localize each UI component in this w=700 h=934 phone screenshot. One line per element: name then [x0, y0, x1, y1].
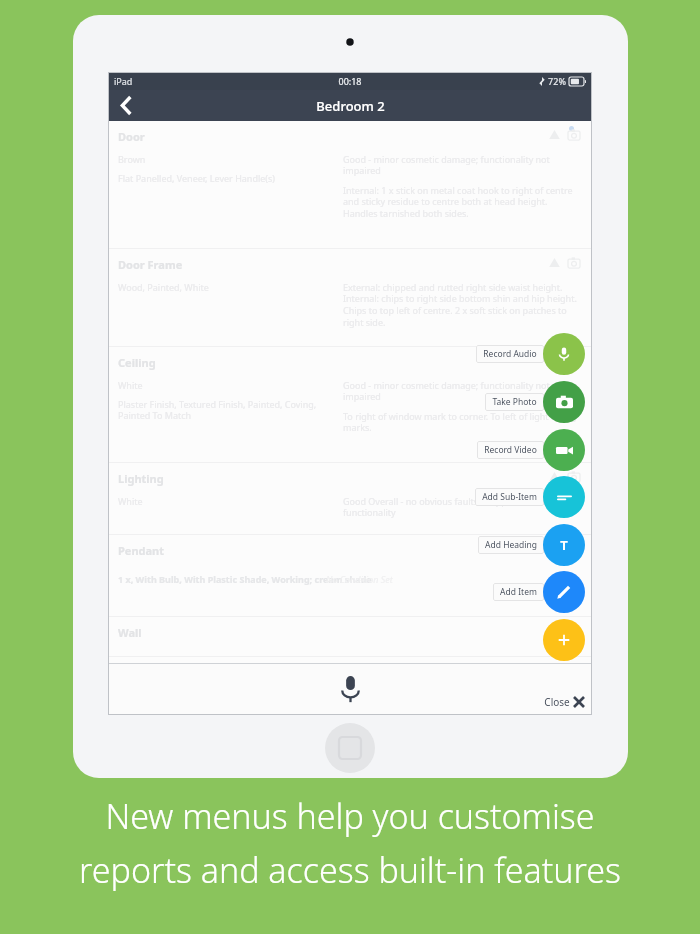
button[interactable]: Back	[108, 90, 144, 121]
button[interactable]: Door	[108, 121, 592, 249]
button[interactable]: Take Photo	[485, 393, 544, 411]
button[interactable]: Record Video	[543, 429, 585, 471]
button[interactable]: Record Audio	[476, 345, 544, 363]
staticText: New menus help you customise	[105, 793, 595, 839]
button[interactable]: Close	[544, 695, 584, 709]
button[interactable]: Add Sub-Item	[475, 488, 544, 506]
button[interactable]: Door Frame	[108, 249, 592, 347]
button[interactable]: Add Heading	[478, 536, 544, 554]
button[interactable]: Add Item	[493, 583, 544, 601]
staticText: Good - minor cosmetic damage; functional…	[343, 379, 578, 403]
staticText: iPad	[114, 75, 133, 87]
staticText: 1 x, With Bulb, With Plastic Shade, Work…	[118, 573, 375, 585]
staticText: To right of window mark to corner. To le…	[343, 410, 578, 434]
button[interactable]: Add Sub-Item	[543, 476, 585, 518]
staticText: Wall	[118, 625, 142, 640]
staticText: External: chipped and rutted right side …	[343, 281, 578, 329]
button[interactable]: Record audio	[329, 668, 371, 710]
staticText: Plaster Finish, Textured Finish, Painted…	[118, 398, 335, 422]
staticText: Good Overall - no obvious faults in appe…	[343, 495, 578, 519]
button[interactable]: Lighting	[108, 463, 592, 535]
staticText: Take Photo	[492, 396, 537, 408]
staticText: Internal: 1 x stick on metal coat hook t…	[343, 184, 578, 220]
button[interactable]: Record Video	[477, 441, 544, 459]
staticText: Ceiling	[118, 355, 156, 370]
staticText: No Condition Set	[326, 573, 393, 585]
staticText: Close	[544, 695, 570, 709]
button[interactable]: Wall	[108, 617, 592, 657]
staticText: reports and access built-in features	[79, 847, 621, 893]
button[interactable]: Add Heading	[543, 524, 585, 566]
button[interactable]: Pendant	[108, 535, 592, 617]
staticText: Lighting	[118, 471, 164, 486]
staticText: Add Item	[500, 586, 537, 598]
staticText: Add Heading	[485, 539, 537, 551]
staticText: Door	[118, 129, 145, 144]
staticText: 72%	[548, 75, 566, 87]
staticText: Bedroom 2	[316, 97, 385, 115]
staticText: Record Audio	[483, 348, 537, 360]
button[interactable]: Add	[543, 619, 585, 661]
staticText: Pendant	[118, 543, 165, 558]
button[interactable]: Record Audio	[543, 333, 585, 375]
staticText: 00:18	[338, 75, 362, 87]
staticText: Door Frame	[118, 257, 183, 272]
staticText: Record Video	[484, 444, 537, 456]
staticText: Good - minor cosmetic damage; functional…	[343, 153, 578, 177]
button[interactable]: Add Item	[543, 571, 585, 613]
staticText: Add Sub-Item	[482, 491, 537, 503]
staticText: Wood, Painted, White	[118, 281, 335, 293]
button[interactable]: Ceiling	[108, 347, 592, 463]
button[interactable]: Take Photo	[543, 381, 585, 423]
staticText: T	[560, 536, 568, 554]
staticText: Flat Panelled, Veneer, Lever Handle(s)	[118, 172, 335, 184]
